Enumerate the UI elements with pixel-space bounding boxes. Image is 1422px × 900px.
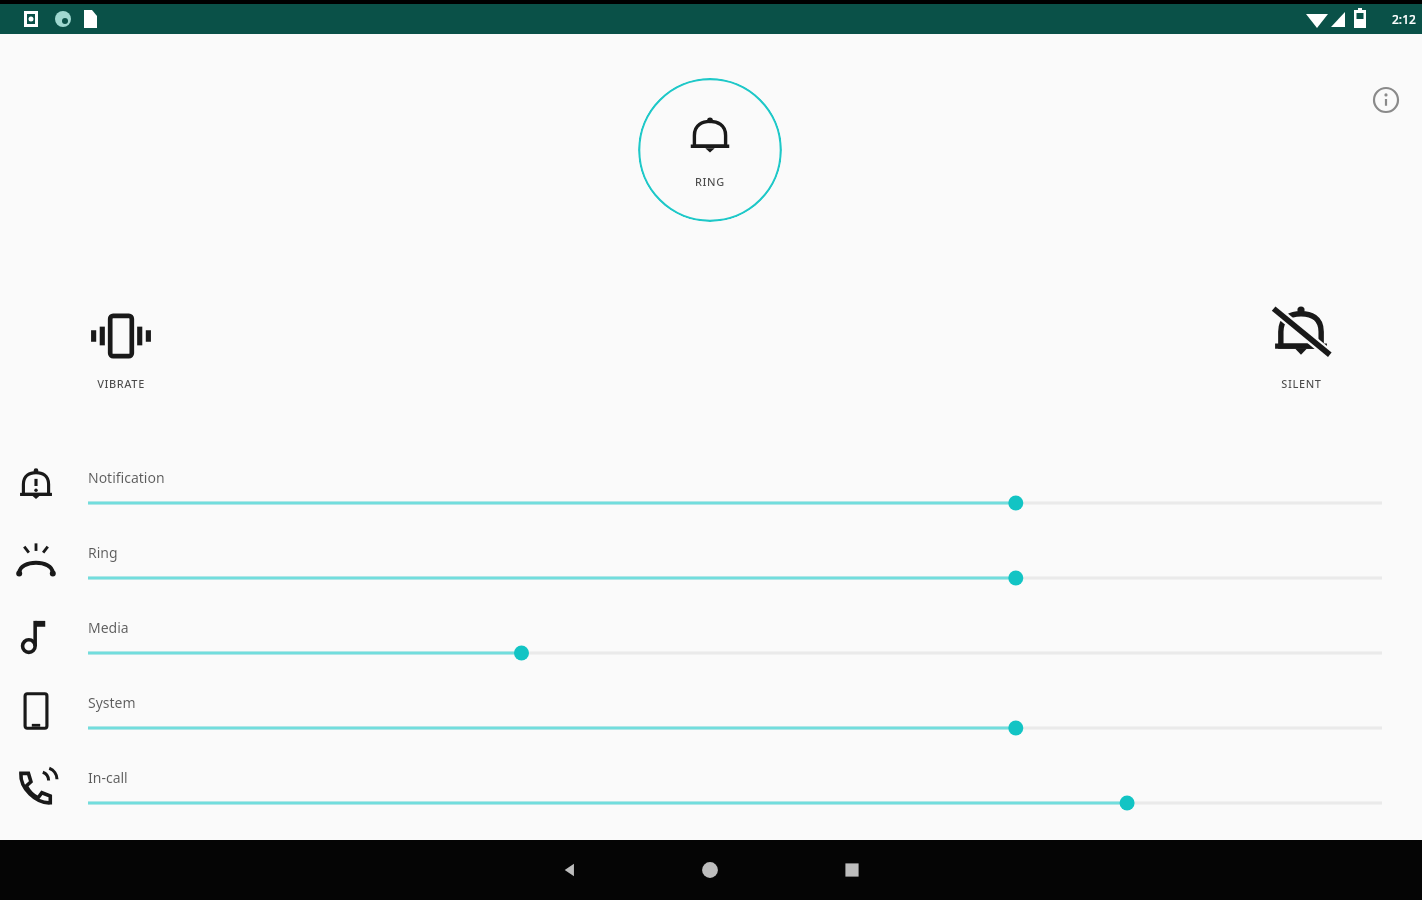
staticText: Media bbox=[88, 618, 129, 637]
button[interactable]: Alarm bbox=[0, 823, 1422, 898]
button[interactable]: RING bbox=[638, 78, 782, 222]
staticText: Ring bbox=[88, 543, 118, 562]
button[interactable]: Info bbox=[1362, 76, 1410, 124]
button[interactable]: Home bbox=[680, 840, 740, 900]
button[interactable]: Recents bbox=[822, 840, 882, 900]
button[interactable]: VIBRATE bbox=[62, 296, 180, 395]
staticText: In-call bbox=[88, 768, 128, 787]
button[interactable]: SILENT bbox=[1242, 296, 1360, 395]
button[interactable]: Ring bbox=[0, 523, 1422, 598]
staticText: Notification bbox=[88, 468, 165, 487]
staticText: SILENT bbox=[1281, 376, 1322, 391]
button[interactable]: Back bbox=[540, 840, 600, 900]
button[interactable]: Notification bbox=[0, 448, 1422, 523]
staticText: VIBRATE bbox=[97, 376, 145, 391]
button[interactable]: In-call bbox=[0, 748, 1422, 823]
button[interactable]: Media bbox=[0, 598, 1422, 673]
staticText: 2:12 bbox=[1392, 11, 1416, 27]
button[interactable]: System bbox=[0, 673, 1422, 748]
staticText: RING bbox=[695, 174, 725, 189]
staticText: System bbox=[88, 693, 136, 712]
